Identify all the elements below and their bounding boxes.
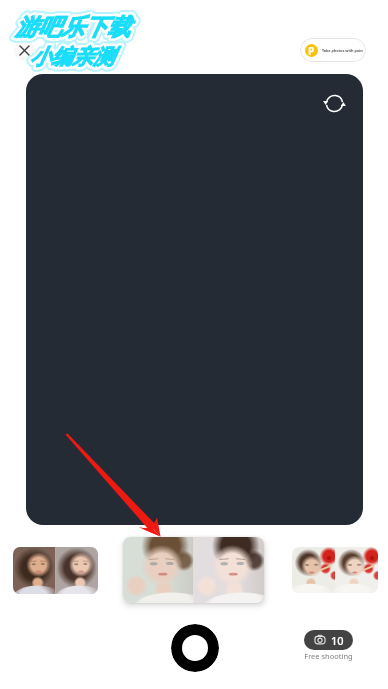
staticText: 游吧乐下载 <box>15 13 130 42</box>
staticText: 10 <box>331 633 344 648</box>
staticText: 小编亲测 <box>30 44 114 70</box>
staticText: 小编亲测 <box>30 44 114 70</box>
button[interactable]: Style preview <box>123 537 264 603</box>
button[interactable]: Style preview <box>292 547 378 593</box>
staticText: P <box>308 44 315 57</box>
button[interactable]: 10 <box>304 630 353 650</box>
button[interactable]: Style preview <box>13 547 98 594</box>
staticText: Free shooting <box>304 651 353 661</box>
button[interactable]: Switch camera <box>318 87 350 119</box>
staticText: 小编亲测 <box>30 44 114 70</box>
staticText: 游吧乐下载 <box>15 13 130 42</box>
staticText: 游吧乐下载 <box>15 13 130 42</box>
button[interactable]: P <box>300 38 366 62</box>
button[interactable]: Shutter <box>171 624 219 672</box>
staticText: Take photos with points <box>322 48 363 53</box>
button[interactable]: Close <box>14 40 35 61</box>
